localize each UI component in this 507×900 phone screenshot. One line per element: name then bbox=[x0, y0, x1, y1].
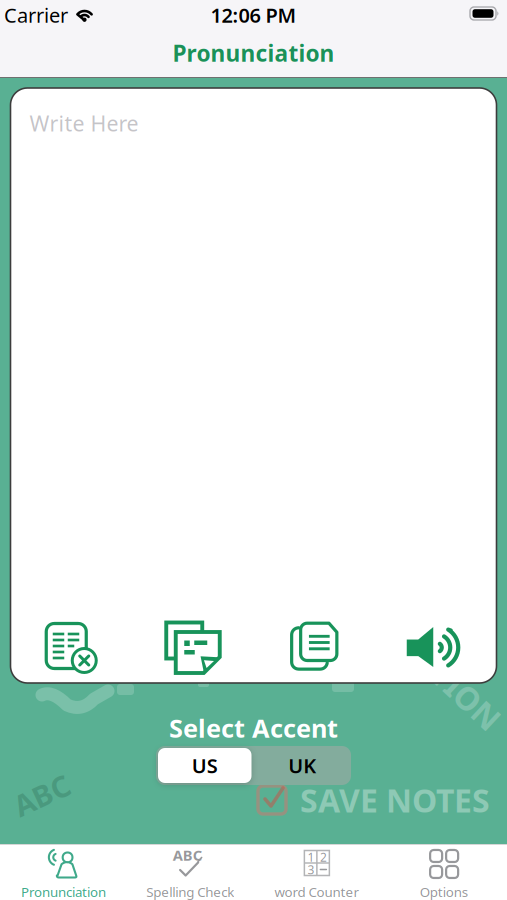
button[interactable]: Copy notes bbox=[132, 620, 253, 675]
staticText: Select Accent bbox=[169, 711, 338, 745]
staticText: Pronunciation bbox=[172, 38, 334, 68]
staticText: Carrier bbox=[4, 2, 68, 28]
staticText: PRONUNCIATION bbox=[257, 609, 507, 651]
staticText: 2 bbox=[320, 849, 327, 865]
button[interactable]: US bbox=[156, 746, 253, 785]
button[interactable]: UK bbox=[253, 746, 351, 785]
staticText: UK bbox=[288, 752, 316, 779]
staticText: Options bbox=[420, 883, 468, 900]
staticText: ABC bbox=[173, 845, 202, 865]
staticText: SAVE NOTES bbox=[300, 779, 490, 821]
staticText: US bbox=[192, 752, 218, 779]
staticText: 3 bbox=[307, 861, 314, 877]
staticText: Pronunciation bbox=[21, 883, 106, 900]
button[interactable]: ABC bbox=[127, 845, 254, 900]
button[interactable]: Pronunciation bbox=[0, 845, 127, 900]
button[interactable]: Clear text bbox=[10, 621, 132, 673]
staticText: Spelling Check bbox=[146, 883, 234, 900]
staticText: Write Here bbox=[29, 109, 138, 137]
button[interactable]: 1 bbox=[253, 845, 380, 900]
staticText: ABC bbox=[12, 775, 71, 814]
staticText: 12:06 PM bbox=[210, 2, 296, 28]
staticText: word Counter bbox=[274, 883, 359, 900]
staticText: 1 bbox=[307, 849, 314, 865]
button[interactable]: Speak bbox=[375, 626, 496, 668]
button[interactable]: Options bbox=[380, 845, 507, 900]
button[interactable]: Paste bbox=[253, 621, 375, 673]
